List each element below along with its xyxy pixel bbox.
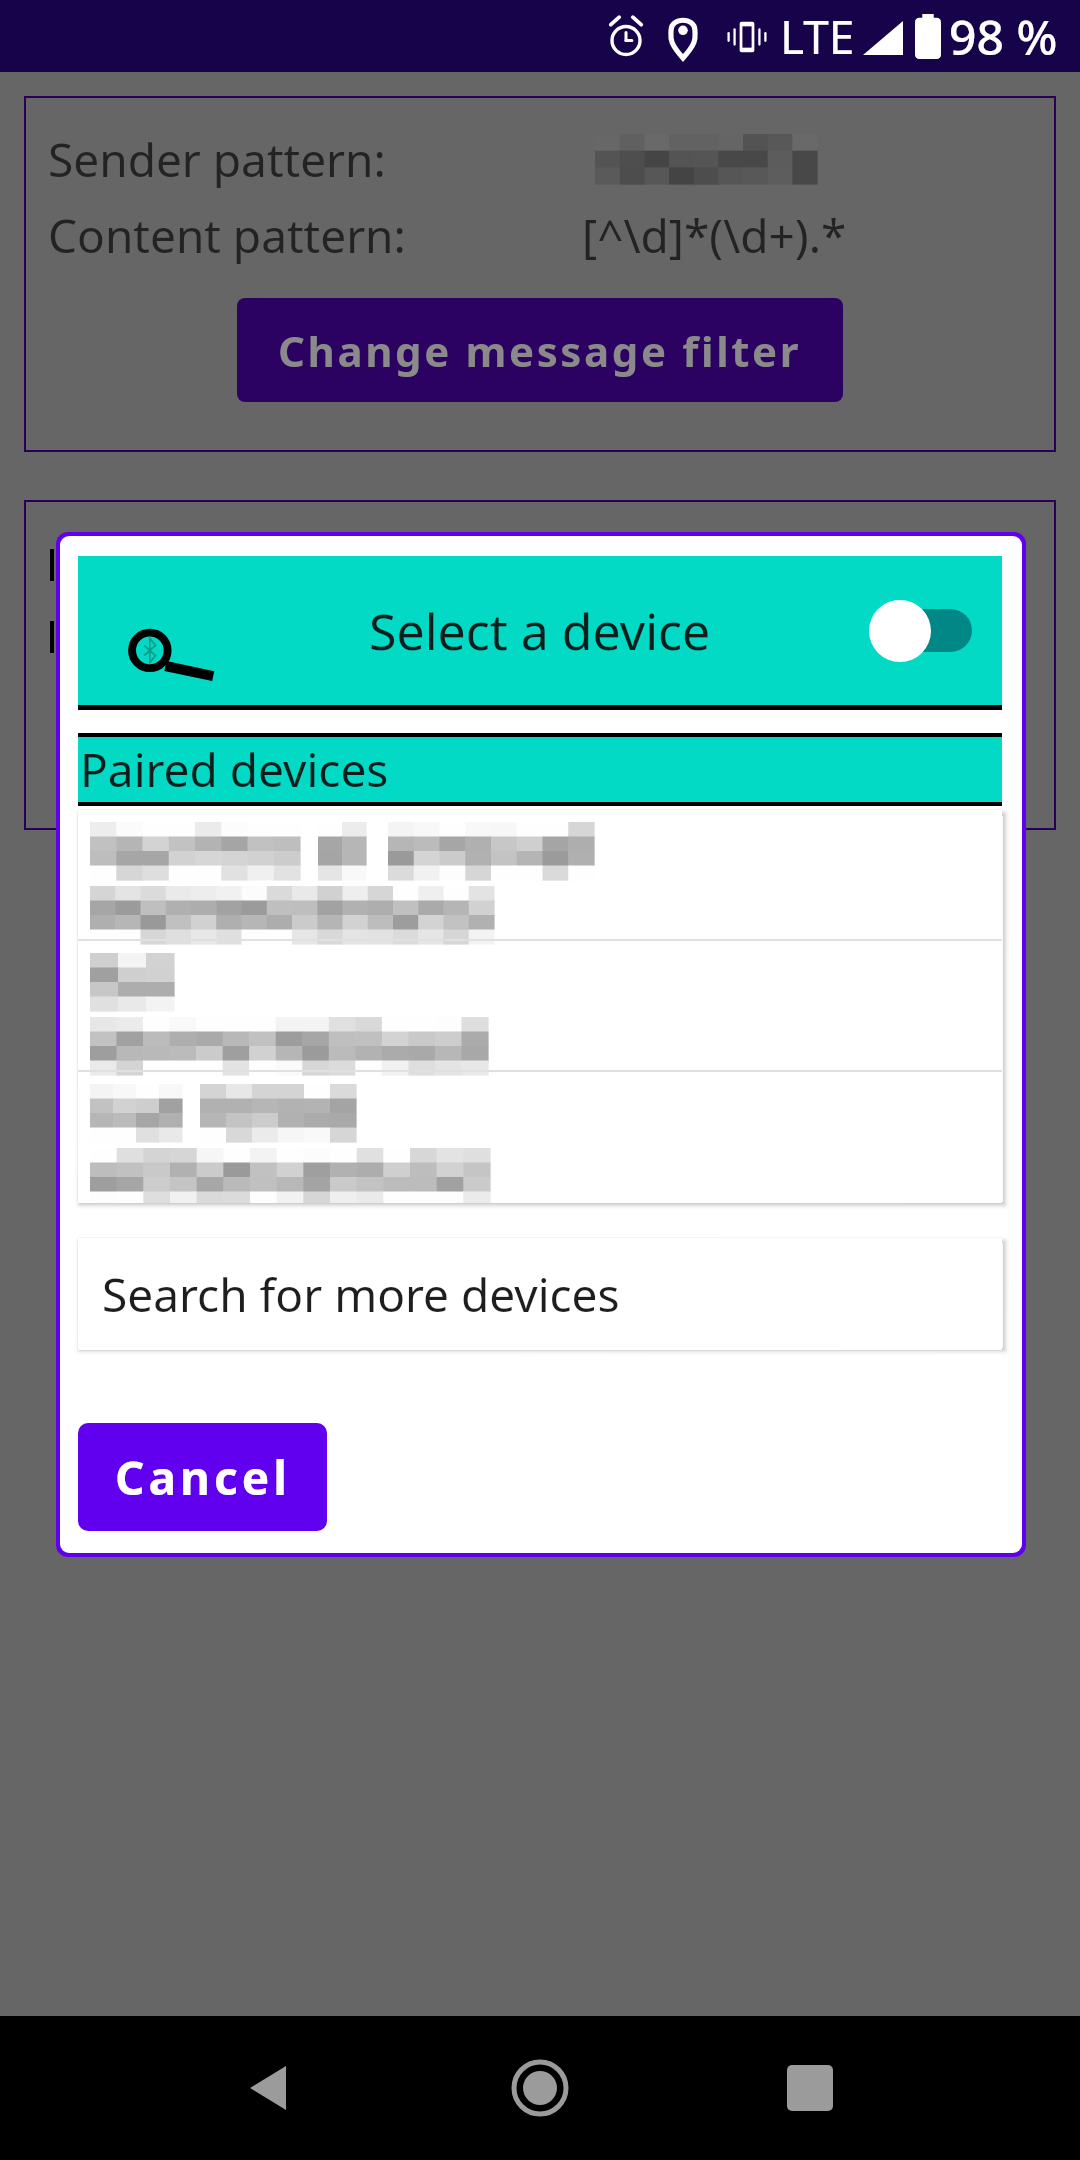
staticText: [^\d]*(\d+).*	[582, 204, 847, 267]
staticText: Search for more devices	[102, 1263, 620, 1326]
button[interactable]	[78, 1072, 1002, 1201]
button[interactable]	[78, 810, 1002, 939]
staticText: Paired devices	[80, 738, 389, 801]
staticText: Select a device	[369, 597, 711, 665]
staticText: Sender pattern:	[48, 128, 386, 191]
button[interactable]: Home	[492, 2040, 588, 2136]
button[interactable]	[78, 941, 1002, 1070]
button[interactable]: Back	[222, 2040, 318, 2136]
staticText: LTE	[780, 5, 855, 68]
button[interactable]: Change message filter	[237, 298, 843, 402]
button[interactable]: Cancel	[78, 1423, 327, 1531]
button[interactable]: Enable bluetooth	[869, 599, 972, 662]
staticText: Content pattern:	[48, 204, 406, 267]
staticText: Change message filter	[278, 322, 802, 379]
staticText: 98 %	[949, 4, 1058, 69]
button[interactable]: Search for more devices	[78, 1238, 1002, 1350]
staticText: Cancel	[115, 1446, 291, 1509]
button[interactable]: Recent apps	[762, 2040, 858, 2136]
